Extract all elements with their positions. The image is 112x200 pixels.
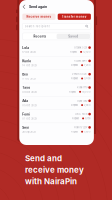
staticText: Lola [22, 46, 29, 50]
staticText: receive money [25, 165, 84, 175]
staticText: 17 Oct 2023 [22, 51, 35, 54]
staticText: 28 Sep 2023 [22, 130, 35, 133]
staticText: 18,000 [82, 90, 91, 93]
button[interactable]: Bisi [19, 70, 94, 83]
staticText: Zenith 4420 [72, 73, 87, 76]
staticText: Recents [33, 35, 46, 38]
button[interactable]: Transfer money [58, 14, 91, 20]
staticText: Bisi [22, 72, 28, 76]
staticText: 3,450 [84, 77, 91, 80]
staticText: Send and [25, 153, 62, 163]
staticText: with NairaPin [25, 176, 77, 186]
staticText: Gtbank 0231 [74, 46, 87, 49]
button[interactable]: Ada [19, 96, 94, 110]
staticText: Repeat [71, 104, 78, 107]
staticText: Seyi [22, 126, 29, 129]
staticText: Send again [29, 5, 47, 9]
button[interactable]: Saved [57, 34, 90, 39]
staticText: 01 Oct 2023 [22, 117, 36, 120]
button[interactable]: Recents [23, 34, 57, 39]
staticText: Tayo [22, 86, 30, 89]
button[interactable]: Lola [19, 43, 94, 57]
staticText: Kuda 7719 [77, 86, 87, 89]
button[interactable]: Femi [19, 110, 94, 123]
staticText: Access 8841 [74, 59, 87, 62]
button[interactable]: Tayo [19, 83, 94, 96]
staticText: 2,900 [84, 104, 91, 107]
button[interactable]: Kunle [19, 57, 94, 70]
staticText: 12,500 [83, 50, 91, 53]
staticText: Transfer money [62, 15, 87, 18]
staticText: Fidelity 2207 [74, 126, 87, 129]
staticText: 05 Oct 2023 [22, 104, 36, 107]
staticText: Kunle [22, 59, 31, 63]
staticText: Repeat [70, 50, 77, 53]
staticText: Repeat [71, 77, 78, 80]
button[interactable]: Search recipient [19, 20, 94, 29]
staticText: Repeat [72, 117, 79, 120]
staticText: 11 Oct 2023 [22, 77, 35, 80]
staticText: Search recipient [25, 25, 50, 28]
staticText: 14 Oct 2023 [22, 64, 36, 67]
staticText: 5,600 [84, 130, 91, 133]
staticText: UBA 5108 [75, 113, 87, 115]
staticText: 9,750 [85, 117, 91, 120]
staticText: Receive money [26, 15, 51, 18]
staticText: Repeat [71, 64, 78, 67]
staticText: Repeat [69, 90, 76, 93]
staticText: Repeat [71, 130, 78, 133]
staticText: 09 Oct 2023 [22, 91, 36, 93]
staticText: Opay 3362 [77, 99, 87, 102]
staticText: Femi [22, 112, 30, 116]
staticText: 7,200 [84, 64, 91, 67]
staticText: Saved [68, 35, 78, 38]
button[interactable]: Receive money [22, 14, 55, 20]
staticText: Ada [22, 99, 28, 103]
button[interactable]: Seyi [19, 123, 94, 136]
button[interactable]: Back [21, 4, 26, 10]
